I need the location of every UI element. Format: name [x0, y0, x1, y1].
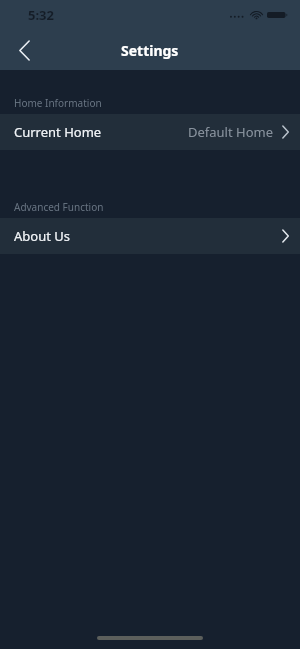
staticText: About Us	[14, 227, 71, 245]
staticText: Advanced Function	[14, 200, 104, 214]
button[interactable]: Back	[8, 34, 40, 66]
staticText: 5:32	[28, 6, 54, 24]
staticText: Default Home	[188, 123, 274, 141]
staticText: Settings	[121, 41, 179, 60]
staticText: Home Information	[14, 96, 102, 110]
staticText: Current Home	[14, 123, 102, 141]
button[interactable]: Current Home	[0, 114, 300, 150]
button[interactable]: About Us	[0, 218, 300, 254]
